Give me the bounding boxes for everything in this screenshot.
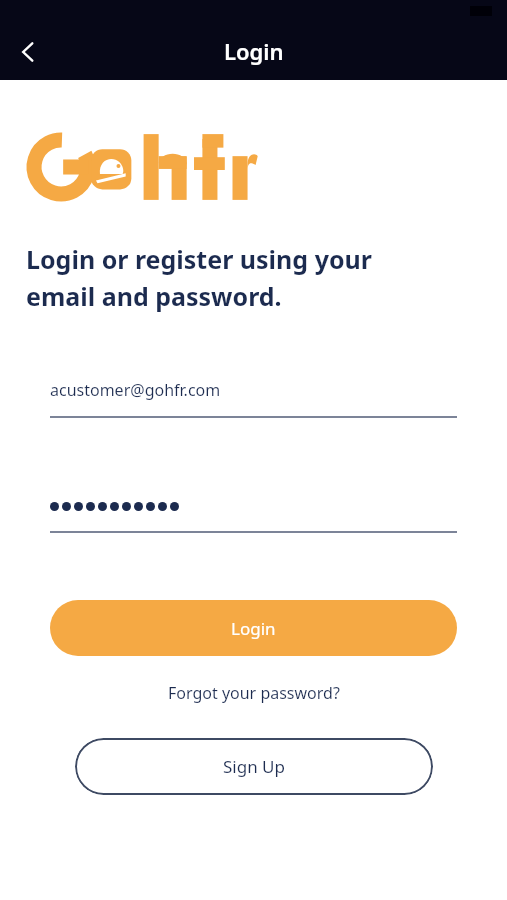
button[interactable]: acustomer@gohfr.com bbox=[50, 379, 457, 418]
staticText: Login or register using your email and p… bbox=[26, 242, 372, 313]
button[interactable]: Login bbox=[50, 600, 457, 656]
button[interactable]: Back bbox=[0, 24, 56, 80]
button[interactable]: Forgot your password? bbox=[160, 678, 348, 708]
staticText: Login bbox=[231, 617, 276, 640]
button[interactable] bbox=[50, 495, 457, 533]
staticText: Forgot your password? bbox=[168, 682, 340, 704]
staticText: acustomer@gohfr.com bbox=[50, 379, 221, 401]
staticText: Login bbox=[224, 36, 284, 66]
button[interactable]: Sign Up bbox=[75, 738, 433, 795]
staticText: Sign Up bbox=[223, 755, 285, 778]
